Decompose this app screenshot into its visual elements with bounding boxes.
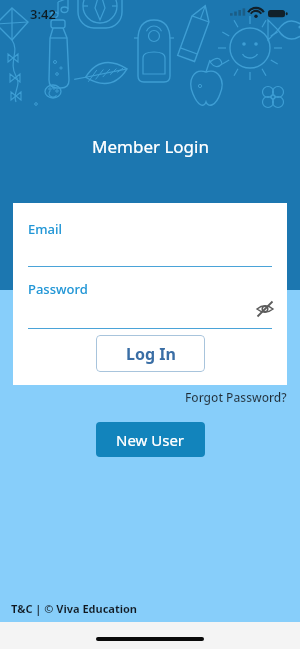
staticText: Log In <box>126 343 176 365</box>
staticText: Password <box>28 280 88 298</box>
staticText: New User <box>116 430 185 450</box>
button[interactable]: Forgot Password? <box>185 389 287 405</box>
staticText: Email <box>28 220 63 238</box>
staticText: 3:42 <box>30 5 56 23</box>
button[interactable]: New User <box>96 422 205 457</box>
button[interactable]: Show password <box>254 298 276 320</box>
button[interactable]: Log In <box>96 335 205 372</box>
staticText: Forgot Password? <box>185 389 287 405</box>
staticText: T&C | © Viva Education <box>11 601 138 616</box>
staticText: Member Login <box>92 135 209 158</box>
button[interactable]: Password <box>13 267 287 329</box>
button[interactable]: Email <box>13 203 287 267</box>
button[interactable]: T&C | © Viva Education <box>11 601 138 616</box>
